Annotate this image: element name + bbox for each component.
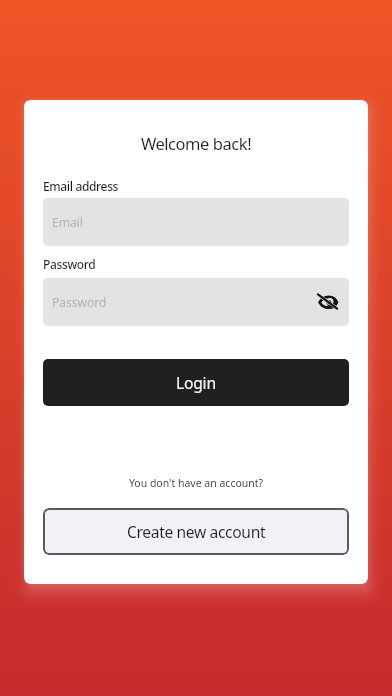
staticText: Email address (43, 178, 119, 194)
staticText: Create new account (127, 521, 266, 542)
staticText: Login (176, 372, 216, 393)
staticText: Email (52, 214, 83, 230)
button[interactable]: Login (43, 359, 349, 406)
staticText: Password (43, 256, 96, 272)
button[interactable]: Show password (305, 282, 345, 322)
staticText: Password (52, 294, 107, 310)
staticText: Welcome back! (43, 132, 349, 154)
button[interactable]: Create new account (43, 508, 349, 555)
button[interactable]: Password (43, 278, 349, 326)
staticText: You don't have an account? (43, 476, 349, 490)
button[interactable]: Email (43, 198, 349, 246)
